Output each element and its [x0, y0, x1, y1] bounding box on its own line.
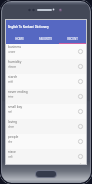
staticText: HOME	[15, 37, 24, 41]
button[interactable]: Pronounce	[75, 59, 86, 74]
button[interactable]: niece	[6, 149, 86, 164]
button[interactable]: Pronounce	[75, 89, 86, 104]
button[interactable]: humidity	[6, 59, 86, 74]
staticText: starch	[8, 75, 18, 79]
button[interactable]: HOME	[6, 34, 32, 44]
button[interactable]: Pronounce	[75, 134, 86, 149]
other: Home	[35, 170, 57, 178]
staticText: ओलसाण	[8, 65, 17, 68]
staticText: लोक	[8, 140, 13, 143]
staticText: कांजी	[8, 80, 13, 83]
button[interactable]: people	[6, 134, 86, 149]
button[interactable]: Pronounce	[75, 119, 86, 134]
button[interactable]: English To Konkani Dictionary	[6, 20, 86, 34]
button[interactable]: FAVORITE	[32, 34, 59, 44]
staticText: चलो	[8, 110, 12, 113]
staticText: मोगाळ	[8, 125, 14, 128]
button[interactable]: Pronounce	[75, 149, 86, 164]
button[interactable]: starch	[6, 74, 86, 89]
staticText: English To Konkani Dictionary	[8, 25, 49, 29]
button[interactable]: business	[6, 44, 86, 59]
button[interactable]: loving	[6, 119, 86, 134]
button[interactable]: RECENT	[59, 34, 86, 44]
button[interactable]: Pronounce	[75, 104, 86, 119]
button[interactable]: never ending	[6, 89, 86, 104]
button[interactable]: small boy	[6, 104, 86, 119]
staticText: FAVORITE	[39, 37, 52, 41]
staticText: business	[8, 45, 22, 49]
button[interactable]: Pronounce	[75, 74, 86, 89]
staticText: small boy	[8, 105, 23, 109]
button[interactable]: Pronounce	[75, 44, 86, 59]
staticText: भाची	[8, 155, 13, 158]
staticText: loving	[8, 120, 18, 124]
staticText: niece	[8, 150, 16, 154]
staticText: व्यवसाय	[8, 50, 16, 53]
staticText: RECENT	[67, 37, 78, 41]
staticText: निरंतर	[8, 95, 14, 98]
staticText: humidity	[8, 60, 22, 64]
staticText: never ending	[8, 90, 28, 94]
staticText: people	[8, 135, 19, 139]
